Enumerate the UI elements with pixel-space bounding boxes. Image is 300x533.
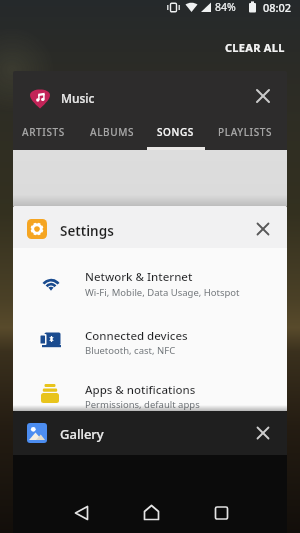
button[interactable]	[253, 219, 273, 239]
staticText: SONGS	[157, 125, 194, 139]
button[interactable]	[135, 498, 165, 528]
button[interactable]	[13, 310, 287, 368]
button[interactable]: CLEAR ALL	[222, 38, 288, 56]
staticText: 84%	[215, 0, 236, 14]
staticText: ALBUMS	[90, 125, 135, 139]
staticText: Network & Internet	[85, 269, 193, 285]
staticText: 08:02	[263, 0, 292, 15]
button[interactable]: Settings	[13, 206, 287, 411]
staticText: Connected devices	[85, 328, 188, 344]
button[interactable]: ARTISTS	[13, 71, 56, 91]
staticText: Settings	[60, 222, 114, 240]
staticText: CLEAR ALL	[225, 40, 285, 55]
button[interactable]: SONGS	[13, 71, 50, 91]
staticText: Gallery	[60, 425, 104, 443]
button[interactable]: Music	[13, 71, 287, 206]
button[interactable]	[13, 246, 287, 310]
staticText: Wi-Fi, Mobile, Data Usage, Hotspot	[85, 286, 240, 299]
button[interactable]	[253, 423, 273, 443]
button[interactable]: PLAYLISTS	[13, 71, 68, 91]
button[interactable]	[253, 86, 273, 106]
button[interactable]	[13, 368, 287, 411]
staticText: Music	[61, 90, 95, 106]
button[interactable]: Gallery	[13, 411, 287, 533]
button[interactable]	[206, 498, 236, 528]
button[interactable]	[66, 498, 96, 528]
staticText: Apps & notifications	[85, 382, 196, 398]
button[interactable]: ALBUMS	[13, 71, 58, 91]
staticText: PLAYLISTS	[218, 125, 273, 139]
staticText: Permissions, default apps	[85, 398, 200, 411]
staticText: Bluetooth, cast, NFC	[85, 344, 176, 357]
staticText: ARTISTS	[22, 125, 65, 139]
